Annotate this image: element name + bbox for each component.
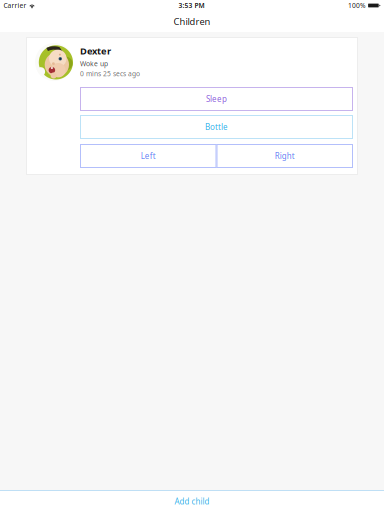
staticText: 100% [348,1,366,10]
staticText: Bottle [205,122,228,132]
staticText: Carrier [3,1,26,10]
button[interactable]: Add child [0,491,384,512]
staticText: Add child [174,496,209,507]
staticText: 3:53 PM [179,1,205,10]
button[interactable]: Right [216,144,353,168]
staticText: Woke up [80,59,108,68]
staticText: Left [141,151,156,161]
button[interactable]: Bottle [80,115,353,139]
staticText: Sleep [206,94,227,104]
button[interactable]: Sleep [80,87,353,111]
staticText: 0 mins 25 secs ago [80,69,140,78]
staticText: Dexter [80,45,111,57]
button[interactable]: Left [80,144,216,168]
staticText: Right [275,151,295,161]
staticText: Children [173,15,210,28]
